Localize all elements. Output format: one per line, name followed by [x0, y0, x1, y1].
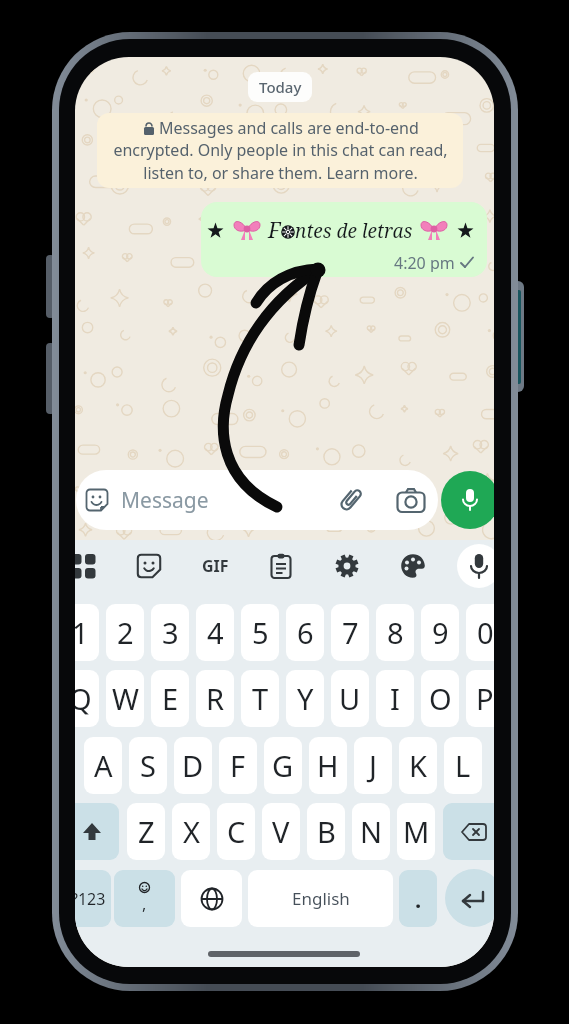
staticText: 9 — [432, 613, 449, 652]
staticText: 7 — [342, 613, 359, 652]
button[interactable]: 0 — [466, 604, 494, 661]
button[interactable]: ?123 — [75, 870, 111, 927]
staticText: U — [339, 679, 361, 718]
staticText: X — [183, 812, 200, 851]
button[interactable] — [443, 803, 494, 860]
staticText: 0 — [477, 613, 494, 652]
button[interactable]: A — [84, 737, 122, 794]
button[interactable]: Z — [127, 803, 165, 860]
staticText: J — [369, 746, 377, 785]
button[interactable]: . — [399, 870, 437, 927]
button[interactable] — [441, 471, 494, 529]
staticText: H — [317, 746, 339, 785]
staticText: Today — [259, 77, 302, 97]
button[interactable]: English — [248, 870, 393, 927]
staticText: ntes de letras — [295, 218, 413, 244]
button[interactable]: X — [172, 803, 210, 860]
button[interactable] — [391, 544, 435, 588]
staticText: R — [206, 679, 225, 718]
staticText: 6 — [297, 613, 314, 652]
staticText: D — [182, 746, 204, 785]
button[interactable] — [201, 202, 487, 277]
button[interactable] — [457, 544, 494, 588]
staticText: F — [268, 216, 281, 245]
button[interactable]: 5 — [241, 604, 279, 661]
button[interactable]: W — [106, 670, 144, 727]
button[interactable]: 3 — [151, 604, 189, 661]
button[interactable] — [75, 544, 105, 588]
staticText: Q — [75, 679, 92, 718]
staticText: L — [455, 746, 471, 785]
button[interactable]: 8 — [376, 604, 414, 661]
staticText: P — [476, 679, 494, 718]
button[interactable]: V — [262, 803, 300, 860]
staticText: 5 — [252, 613, 269, 652]
button[interactable]: L — [444, 737, 482, 794]
button[interactable]: 1 — [75, 604, 99, 661]
staticText: 4 — [207, 613, 224, 652]
button[interactable] — [325, 544, 369, 588]
staticText: ?123 — [75, 888, 106, 910]
button[interactable]: Y — [286, 670, 324, 727]
staticText: E — [162, 679, 179, 718]
staticText: O — [429, 679, 452, 718]
button[interactable]: 9 — [421, 604, 459, 661]
staticText: C — [227, 812, 246, 851]
button[interactable]: Message — [76, 470, 438, 530]
staticText: I — [390, 679, 400, 718]
button[interactable]: H — [309, 737, 347, 794]
staticText: 1 — [75, 613, 89, 652]
staticText: English — [292, 887, 350, 910]
button[interactable]: Messages and calls are end-to-end — [97, 113, 463, 188]
button[interactable]: B — [307, 803, 345, 860]
button[interactable]: I — [376, 670, 414, 727]
staticText: V — [272, 812, 290, 851]
staticText: F — [230, 746, 246, 785]
staticText: . — [415, 884, 422, 914]
staticText: S — [140, 746, 156, 785]
staticText: 8 — [387, 613, 404, 652]
staticText: , — [142, 893, 147, 915]
button[interactable]: G — [264, 737, 302, 794]
staticText: A — [94, 746, 113, 785]
button[interactable]: GIF — [193, 544, 237, 588]
button[interactable]: N — [352, 803, 390, 860]
button[interactable]: E — [151, 670, 189, 727]
button[interactable]: P — [466, 670, 494, 727]
button[interactable]: 2 — [106, 604, 144, 661]
staticText: 3 — [162, 613, 179, 652]
button[interactable] — [445, 869, 494, 927]
button[interactable] — [75, 803, 119, 860]
button[interactable]: U — [331, 670, 369, 727]
staticText: N — [360, 812, 383, 851]
button[interactable]: T — [241, 670, 279, 727]
button[interactable]: S — [129, 737, 167, 794]
button[interactable]: R — [196, 670, 234, 727]
button[interactable] — [259, 544, 303, 588]
button[interactable]: 4 — [196, 604, 234, 661]
button[interactable]: F — [219, 737, 257, 794]
button[interactable]: K — [399, 737, 437, 794]
staticText: W — [112, 679, 139, 718]
button[interactable] — [336, 484, 366, 514]
button[interactable]: , — [114, 870, 175, 927]
button[interactable]: M — [397, 803, 435, 860]
staticText: G — [272, 746, 294, 785]
button[interactable] — [181, 870, 242, 927]
button[interactable]: J — [354, 737, 392, 794]
staticText: GIF — [202, 555, 229, 577]
button[interactable] — [396, 488, 426, 513]
button[interactable]: O — [421, 670, 459, 727]
staticText: K — [409, 746, 427, 785]
button[interactable] — [127, 544, 171, 588]
button[interactable]: 6 — [286, 604, 324, 661]
staticText: encrypted. Only people in this chat can … — [113, 139, 448, 184]
staticText: M — [403, 812, 430, 851]
button[interactable]: 7 — [331, 604, 369, 661]
button[interactable]: C — [217, 803, 255, 860]
staticText: 4:20 pm — [394, 252, 455, 272]
staticText: B — [317, 812, 336, 851]
button[interactable]: D — [174, 737, 212, 794]
button[interactable]: Q — [75, 670, 99, 727]
staticText: Z — [138, 812, 155, 851]
